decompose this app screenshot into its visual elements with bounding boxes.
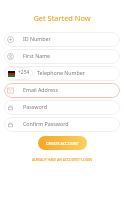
staticText: Email Address (23, 86, 59, 93)
staticText: ID Number (23, 35, 51, 42)
button[interactable]: Email Address (4, 83, 120, 98)
button[interactable]: +254 (4, 67, 33, 80)
staticText: First Name (23, 52, 51, 59)
staticText: CREATE ACCOUNT (46, 141, 79, 146)
button[interactable]: Password (4, 100, 120, 115)
staticText: Confirm Password (23, 120, 69, 127)
button[interactable]: CREATE ACCOUNT (38, 136, 87, 150)
staticText: Password (23, 103, 47, 110)
button[interactable]: Telephone Number (37, 66, 120, 81)
staticText: Telephone Number (37, 69, 85, 76)
button[interactable]: Confirm Password (4, 117, 120, 132)
button[interactable]: ID Number (4, 32, 120, 47)
staticText: +254 (18, 69, 30, 76)
button[interactable]: ALREADY HAVE AN ACCOUNT? LOGIN (29, 155, 95, 164)
staticText: Get Started Now (0, 13, 124, 23)
staticText: ALREADY HAVE AN ACCOUNT? LOGIN (32, 157, 92, 162)
button[interactable]: First Name (4, 49, 120, 64)
